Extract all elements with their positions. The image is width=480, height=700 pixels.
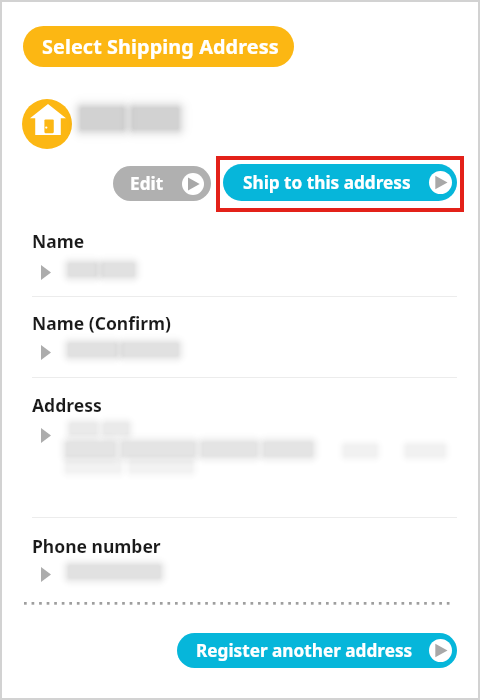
button[interactable]: Ship to this address — [223, 164, 457, 201]
button[interactable]: Register another address — [177, 633, 457, 668]
staticText: Name (Confirm) — [32, 311, 172, 335]
staticText: Ship to this address — [243, 171, 411, 194]
button[interactable]: Select Shipping Address — [23, 26, 294, 67]
staticText: Phone number — [32, 534, 161, 558]
staticText: Address — [32, 393, 102, 417]
staticText: Register another address — [196, 639, 413, 662]
staticText: Edit — [130, 172, 164, 195]
button[interactable]: Home address — [22, 99, 72, 149]
staticText: Name — [32, 229, 85, 253]
button[interactable]: Edit — [113, 166, 211, 201]
staticText: Select Shipping Address — [42, 33, 279, 60]
